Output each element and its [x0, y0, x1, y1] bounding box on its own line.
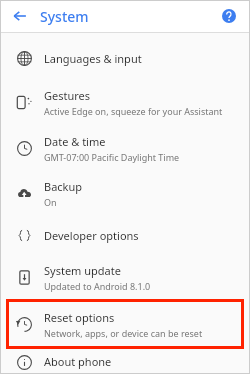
staticText: Network, apps, or device can be reset: [44, 327, 203, 339]
staticText: Backup: [44, 179, 83, 194]
staticText: Developer options: [44, 228, 139, 243]
staticText: Languages & input: [44, 51, 142, 66]
staticText: Gestures: [44, 88, 91, 103]
staticText: System update: [44, 263, 121, 278]
button[interactable]: Reset options: [6, 299, 244, 349]
staticText: Updated to Android 8.1.0: [44, 280, 151, 292]
staticText: System: [40, 7, 89, 26]
button[interactable]: Languages & input: [0, 37, 250, 79]
button[interactable]: Back: [6, 2, 34, 30]
staticText: On: [44, 196, 57, 208]
button[interactable]: Developer options: [0, 215, 250, 255]
button[interactable]: Date & time: [0, 125, 250, 171]
button[interactable]: About phone: [0, 349, 250, 374]
staticText: Active Edge on, squeeze for your Assista…: [44, 105, 223, 117]
button[interactable]: Backup: [0, 171, 250, 215]
staticText: GMT-07:00 Pacific Daylight Time: [44, 151, 180, 163]
button[interactable]: Gestures: [0, 79, 250, 125]
staticText: Date & time: [44, 134, 106, 149]
staticText: Reset options: [44, 310, 115, 325]
button[interactable]: Help: [216, 3, 242, 29]
button[interactable]: System update: [0, 255, 250, 299]
staticText: About phone: [44, 354, 112, 369]
